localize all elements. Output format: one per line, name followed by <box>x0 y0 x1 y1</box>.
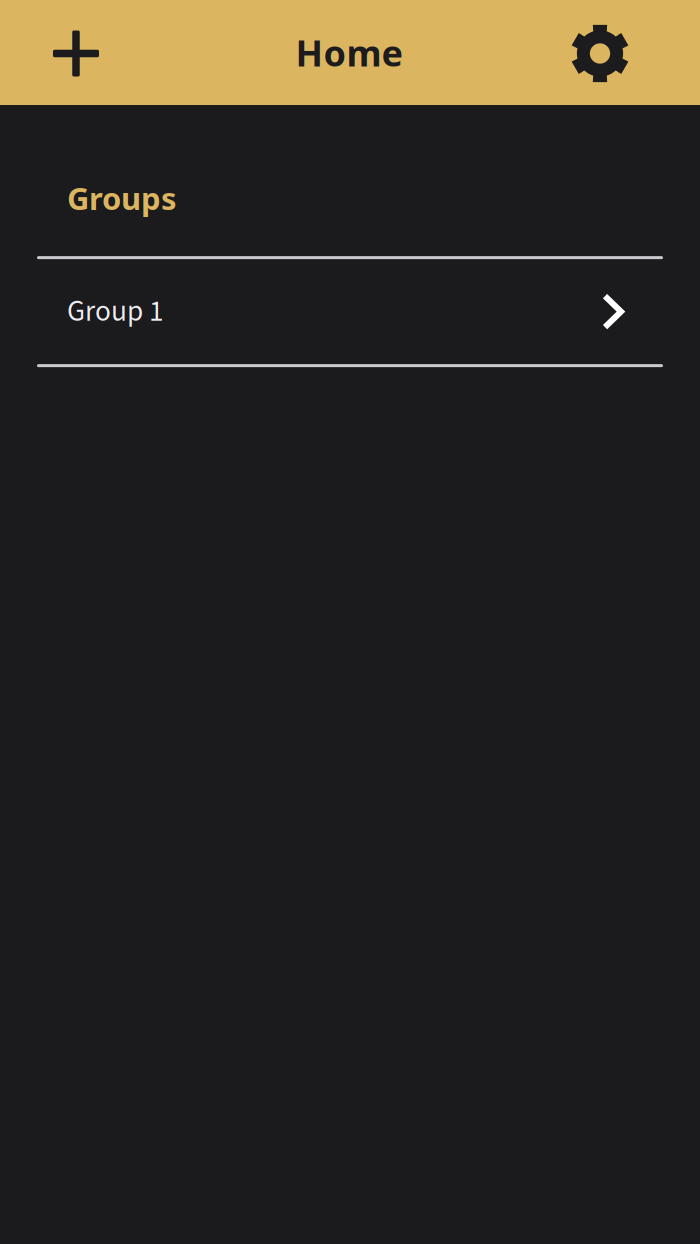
staticText: Home <box>295 28 402 77</box>
button[interactable]: Settings <box>554 7 646 99</box>
button[interactable]: Group 1 <box>0 259 700 364</box>
staticText: Group 1 <box>67 291 164 332</box>
button[interactable]: Add <box>30 7 122 99</box>
staticText: Groups <box>67 177 177 219</box>
